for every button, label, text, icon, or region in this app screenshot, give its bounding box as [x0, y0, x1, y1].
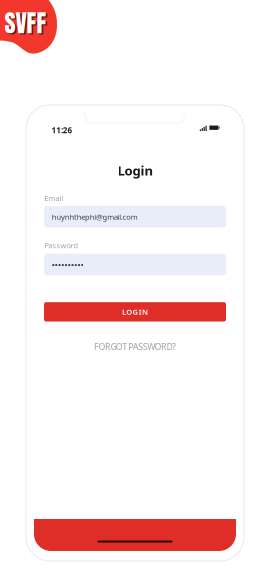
button[interactable]: FORGOT PASSWORD? [44, 340, 226, 352]
staticText: FORGOT PASSWORD? [94, 340, 176, 352]
staticText: •••••••••• [51, 258, 84, 271]
staticText: Password [45, 240, 79, 250]
staticText: SVFF [6, 6, 48, 42]
staticText: Email [45, 193, 64, 203]
staticText: LOGIN [122, 307, 148, 317]
button[interactable]: LOGIN [44, 302, 226, 321]
staticText: Login [117, 161, 152, 179]
staticText: SVFF [5, 5, 47, 41]
staticText: huynhthephi@gmail.com [52, 212, 138, 222]
staticText: 11:26 [52, 125, 73, 136]
